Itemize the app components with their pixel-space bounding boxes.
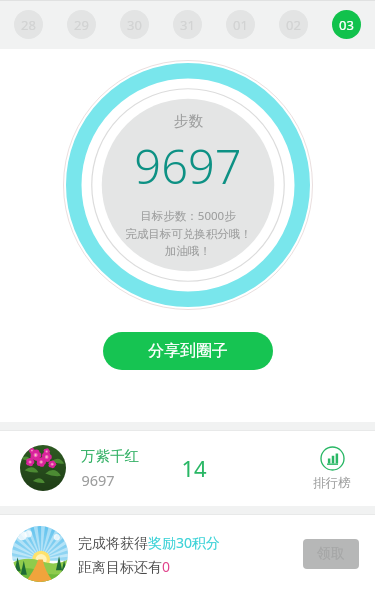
staticText: 万紫千红 xyxy=(81,447,139,465)
staticText: 9697 xyxy=(134,134,242,198)
button[interactable]: 28 xyxy=(14,10,43,39)
button[interactable]: 领取 xyxy=(303,539,359,569)
staticText: 距离目标还有0 xyxy=(78,557,171,576)
button[interactable]: 31 xyxy=(173,10,202,39)
button[interactable]: 万紫千红 xyxy=(0,430,375,506)
button[interactable]: 29 xyxy=(67,10,96,39)
button[interactable]: 02 xyxy=(279,10,308,39)
staticText: 02 xyxy=(286,16,301,34)
staticText: 加油哦！ xyxy=(165,244,211,258)
staticText: 9697 xyxy=(81,470,115,490)
button[interactable]: 03 xyxy=(332,10,361,39)
staticText: 步数 xyxy=(174,112,203,130)
staticText: 29 xyxy=(74,16,89,34)
button[interactable]: 01 xyxy=(226,10,255,39)
staticText: 31 xyxy=(180,16,195,34)
staticText: 领取 xyxy=(317,545,345,563)
staticText: 完成目标可兑换积分哦！ xyxy=(125,227,252,241)
staticText: 28 xyxy=(21,16,36,34)
button[interactable]: 分享到圈子 xyxy=(103,332,273,370)
button[interactable]: 30 xyxy=(120,10,149,39)
staticText: 目标步数：5000步 xyxy=(140,208,236,224)
staticText: 排行榜 xyxy=(313,475,351,491)
staticText: 01 xyxy=(233,16,248,34)
staticText: 完成将获得奖励30积分 xyxy=(78,533,221,552)
staticText: 14 xyxy=(181,453,207,483)
staticText: 30 xyxy=(127,16,142,34)
staticText: 分享到圈子 xyxy=(148,341,228,361)
staticText: 03 xyxy=(339,16,354,34)
button[interactable]: 排行榜 xyxy=(309,442,355,495)
